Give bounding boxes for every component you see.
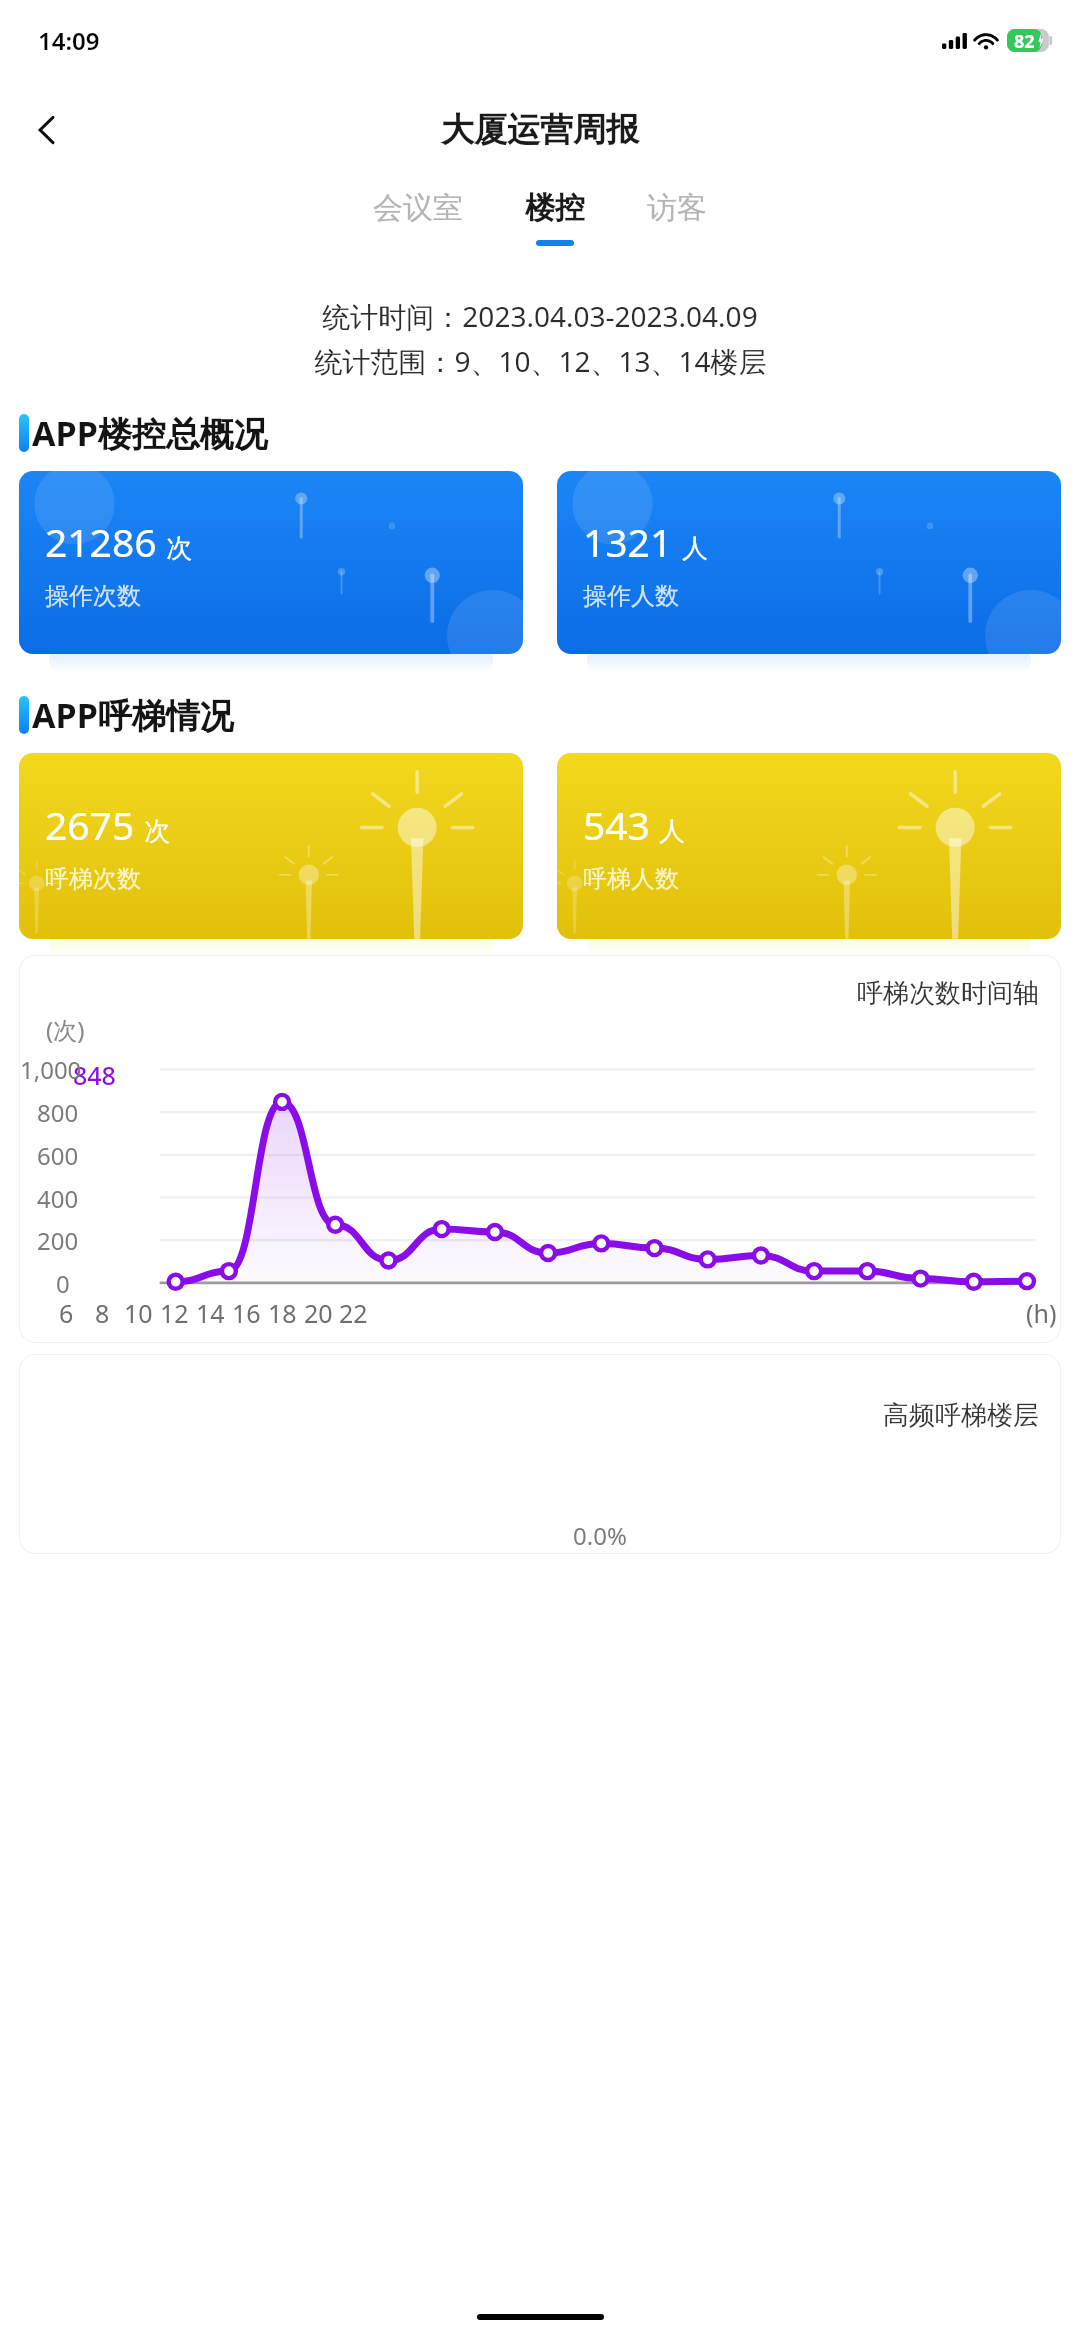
staticText: 呼梯次数时间轴 xyxy=(857,977,1039,1010)
button[interactable]: 楼控 xyxy=(515,183,595,252)
button[interactable]: 高频呼梯楼层 xyxy=(19,1354,1061,1554)
button[interactable]: 会议室 xyxy=(363,183,473,252)
staticText: 大厦运营周报 xyxy=(441,109,639,151)
staticText: 22 xyxy=(339,1296,368,1330)
staticText: 0 xyxy=(56,1267,70,1300)
staticText: 2675 xyxy=(45,798,135,851)
staticText: 14:09 xyxy=(38,24,100,57)
staticText: 0.0% xyxy=(573,1519,627,1552)
staticText: 1,000 xyxy=(20,1053,82,1086)
staticText: 呼梯次数 xyxy=(45,864,141,894)
button[interactable]: 1321 xyxy=(557,471,1061,654)
staticText: APP呼梯情况 xyxy=(32,692,234,738)
staticText: 楼控 xyxy=(525,189,585,227)
staticText: 次 xyxy=(166,532,192,565)
staticText: 人 xyxy=(659,815,685,848)
staticText: 21286 xyxy=(45,515,157,568)
staticText: APP楼控总概况 xyxy=(32,410,268,456)
staticText: 10 xyxy=(124,1296,153,1330)
staticText: 1321 xyxy=(583,515,673,568)
staticText: 人 xyxy=(682,532,708,565)
button[interactable]: Back xyxy=(10,93,84,167)
staticText: 20 xyxy=(304,1296,333,1330)
staticText: 统计范围：9、10、12、13、14楼层 xyxy=(314,342,767,380)
staticText: 82 xyxy=(1014,29,1035,52)
staticText: 200 xyxy=(37,1224,79,1257)
staticText: 操作人数 xyxy=(583,581,679,611)
staticText: 12 xyxy=(160,1296,189,1330)
staticText: 600 xyxy=(37,1139,79,1172)
button[interactable]: 2675 xyxy=(19,753,523,939)
staticText: 848 xyxy=(73,1058,116,1092)
button[interactable]: 呼梯次数时间轴 xyxy=(19,955,1061,1343)
staticText: 操作次数 xyxy=(45,581,141,611)
staticText: 18 xyxy=(268,1296,297,1330)
staticText: 8 xyxy=(95,1296,110,1330)
button[interactable]: 543 xyxy=(557,753,1061,939)
staticText: 呼梯人数 xyxy=(583,864,679,894)
button[interactable]: 访客 xyxy=(637,183,717,252)
staticText: (h) xyxy=(1026,1296,1057,1330)
staticText: 6 xyxy=(59,1296,74,1330)
button[interactable]: 21286 xyxy=(19,471,523,654)
staticText: 次 xyxy=(144,815,170,848)
staticText: 统计时间：2023.04.03-2023.04.09 xyxy=(322,297,758,335)
staticText: 会议室 xyxy=(373,189,463,227)
staticText: (次) xyxy=(46,1013,85,1046)
staticText: 800 xyxy=(37,1096,79,1129)
staticText: 400 xyxy=(37,1182,79,1215)
staticText: 14 xyxy=(196,1296,225,1330)
staticText: 高频呼梯楼层 xyxy=(883,1399,1039,1432)
staticText: 16 xyxy=(232,1296,261,1330)
staticText: 访客 xyxy=(647,189,707,227)
staticText: 543 xyxy=(583,798,650,851)
